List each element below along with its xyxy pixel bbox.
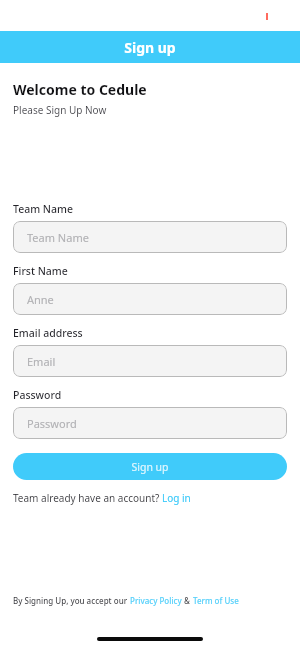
staticText: Please Sign Up Now xyxy=(13,103,107,117)
button[interactable]: Log in xyxy=(162,491,191,505)
button[interactable]: Term of Use xyxy=(193,595,239,606)
staticText: By Signing Up, you accept our xyxy=(13,595,130,606)
staticText: Password xyxy=(27,416,77,431)
staticText: First Name xyxy=(13,264,68,278)
staticText: Team Name xyxy=(13,202,73,216)
button[interactable]: Privacy Policy xyxy=(130,595,182,606)
staticText: Password xyxy=(13,388,62,402)
other: Home indicator xyxy=(97,637,203,641)
staticText: Privacy Policy xyxy=(130,595,182,606)
staticText: & xyxy=(182,595,193,606)
button[interactable]: Team Name xyxy=(13,221,287,253)
staticText: Log in xyxy=(162,491,191,505)
button[interactable]: Password xyxy=(13,407,287,439)
staticText: Team Name xyxy=(27,230,89,245)
staticText: Anne xyxy=(27,292,54,307)
staticText: Sign up xyxy=(131,460,169,474)
button[interactable]: Anne xyxy=(13,283,287,315)
staticText: Email address xyxy=(13,326,83,340)
staticText: Sign up xyxy=(124,38,176,57)
staticText: Email xyxy=(27,354,56,369)
staticText: Team already have an account? xyxy=(13,491,162,505)
staticText: Term of Use xyxy=(193,595,239,606)
button[interactable]: Sign up xyxy=(13,453,287,480)
staticText: Welcome to Cedule xyxy=(13,80,147,99)
button[interactable]: Email xyxy=(13,345,287,377)
